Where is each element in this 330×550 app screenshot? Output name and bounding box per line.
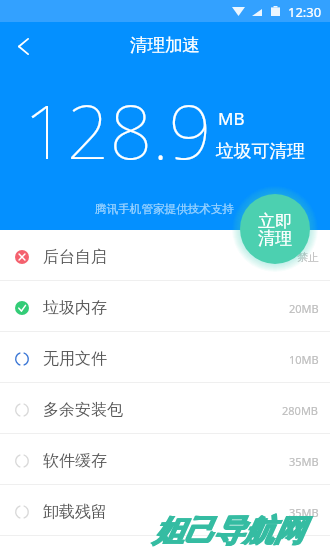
staticText: 卸载残留 xyxy=(43,502,107,522)
staticText: 清理加速 xyxy=(130,34,200,56)
staticText: 12:30 xyxy=(288,3,322,21)
button[interactable]: 卸载残留 xyxy=(0,485,330,536)
staticText: 软件缓存 xyxy=(43,451,107,471)
staticText: 腾讯手机管家提供技术支持 xyxy=(95,202,235,217)
staticText: 垃圾可清理 xyxy=(216,140,305,162)
button[interactable]: 软件缓存 xyxy=(0,434,330,485)
staticText: 立即 xyxy=(258,210,293,232)
staticText: 妲己导航网 xyxy=(154,512,304,550)
staticText: 35MB xyxy=(289,505,319,520)
staticText: MB xyxy=(218,107,245,130)
button[interactable]: Back xyxy=(1,22,47,67)
button[interactable]: 垃圾内存 xyxy=(0,281,330,332)
staticText: 35MB xyxy=(289,454,319,469)
staticText: 妲己导航网 xyxy=(153,512,303,550)
staticText: 后台自启 xyxy=(43,247,107,267)
staticText: 垃圾内存 xyxy=(43,298,107,318)
staticText: 20MB xyxy=(289,301,319,316)
button[interactable]: 多余安装包 xyxy=(0,383,330,434)
staticText: 清理 xyxy=(258,227,293,249)
staticText: 禁止 xyxy=(297,250,319,264)
button[interactable]: 无用文件 xyxy=(0,332,330,383)
button[interactable]: 立即 xyxy=(240,194,310,264)
button[interactable]: 后台自启 xyxy=(0,230,330,281)
staticText: 280MB xyxy=(282,403,319,418)
staticText: 多余安装包 xyxy=(43,400,123,420)
staticText: 128.9 xyxy=(24,79,212,181)
staticText: 无用文件 xyxy=(43,349,107,369)
staticText: 10MB xyxy=(289,352,319,367)
